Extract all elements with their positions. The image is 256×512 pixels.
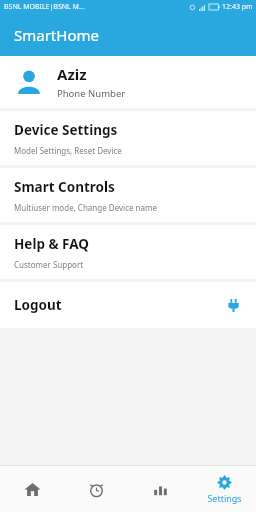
button[interactable]: Statistics xyxy=(128,466,192,512)
staticText: Aziz xyxy=(57,64,87,84)
staticText: Smart Controls xyxy=(14,178,115,196)
button[interactable]: Alarm xyxy=(64,466,128,512)
button[interactable]: Aziz xyxy=(0,56,256,108)
button[interactable]: Settings xyxy=(192,466,256,512)
staticText: SmartHome xyxy=(14,25,99,45)
staticText: Multiuser mode, Change Device name xyxy=(14,202,157,213)
staticText: Phone Number xyxy=(57,87,126,100)
button[interactable]: Home xyxy=(0,466,64,512)
staticText: BSNL MOBILE|BSNL M... xyxy=(4,2,85,12)
staticText: 12:43 pm xyxy=(222,2,253,12)
other: Logout xyxy=(224,296,242,314)
staticText: Model Settings, Reset Device xyxy=(14,145,122,156)
button[interactable]: Logout xyxy=(0,282,256,328)
staticText: Device Settings xyxy=(14,121,118,139)
staticText: Settings xyxy=(207,492,242,504)
staticText: Help & FAQ xyxy=(14,235,89,253)
button[interactable]: Help & FAQ xyxy=(0,225,256,279)
staticText: Customer Support xyxy=(14,259,84,270)
staticText: Logout xyxy=(14,296,62,314)
button[interactable]: Device Settings xyxy=(0,111,256,165)
button[interactable]: Smart Controls xyxy=(0,168,256,222)
